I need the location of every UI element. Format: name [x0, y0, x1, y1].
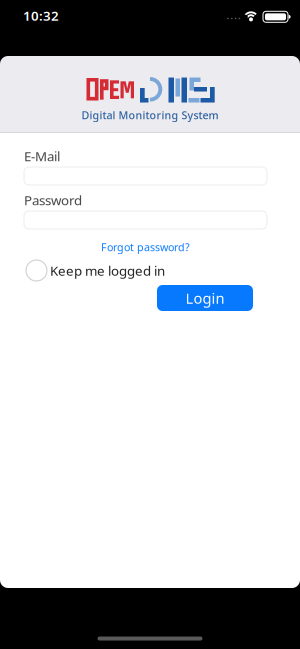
button[interactable]: Forgot password? — [101, 240, 190, 254]
staticText: E-Mail — [24, 147, 60, 165]
button[interactable] — [24, 211, 267, 229]
button[interactable]: Login — [157, 285, 253, 311]
staticText: Login — [185, 288, 224, 308]
staticText: Keep me logged in — [50, 262, 165, 279]
button[interactable] — [24, 167, 267, 185]
staticText: Password — [24, 191, 82, 209]
button[interactable]: Keep me logged in — [24, 260, 165, 281]
staticText: Forgot password? — [101, 240, 190, 254]
staticText: 10:32 — [23, 7, 59, 24]
staticText: Digital Monitoring System — [81, 108, 218, 122]
